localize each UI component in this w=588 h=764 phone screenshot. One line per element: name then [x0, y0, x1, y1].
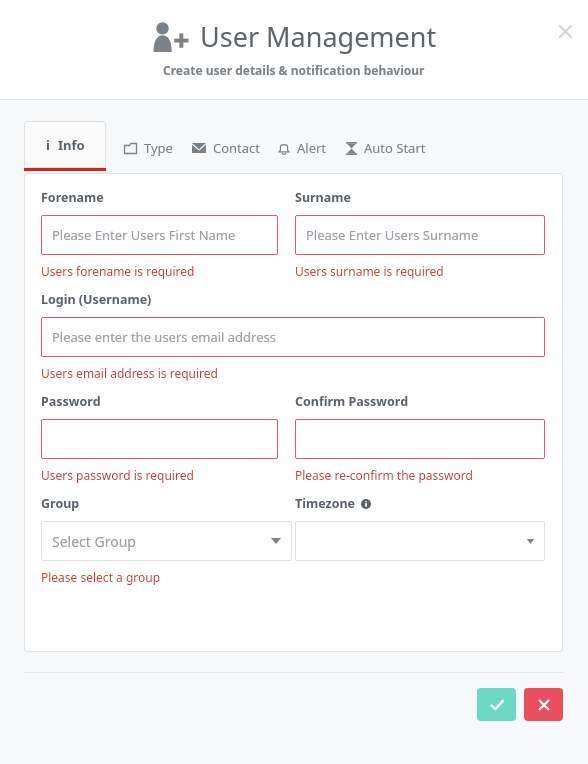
- button[interactable]: Type: [120, 124, 176, 171]
- button[interactable]: Alert: [276, 124, 328, 171]
- button[interactable]: Please Enter Users First Name: [41, 215, 278, 255]
- staticText: i: [46, 136, 50, 154]
- button[interactable]: Select Group: [41, 521, 292, 561]
- staticText: Type: [144, 139, 173, 157]
- staticText: Forename: [41, 189, 104, 206]
- button[interactable]: Select timezone: [295, 521, 545, 561]
- staticText: Auto Start: [364, 139, 426, 157]
- staticText: Surname: [295, 189, 351, 206]
- staticText: Confirm Password: [295, 393, 409, 410]
- staticText: Users forename is required: [41, 263, 195, 279]
- staticText: Login (Username): [41, 291, 152, 308]
- staticText: User Management: [200, 18, 437, 55]
- staticText: Create user details & notification behav…: [163, 62, 425, 78]
- button[interactable]: Save: [477, 688, 516, 721]
- staticText: Info: [58, 136, 85, 154]
- button[interactable]: Close: [553, 19, 577, 43]
- button[interactable]: Auto Start: [342, 124, 430, 171]
- staticText: Users email address is required: [41, 365, 218, 381]
- button[interactable]: Contact: [188, 124, 264, 171]
- staticText: Password: [41, 393, 101, 410]
- button[interactable]: [295, 419, 545, 459]
- staticText: Timezone: [295, 495, 356, 512]
- button[interactable]: [41, 419, 278, 459]
- staticText: Users surname is required: [295, 263, 444, 279]
- staticText: Select Group: [52, 532, 136, 551]
- staticText: Please enter the users email address: [52, 328, 276, 346]
- staticText: Please Enter Users Surname: [306, 226, 479, 244]
- staticText: Please Enter Users First Name: [52, 226, 236, 244]
- button[interactable]: Please Enter Users Surname: [295, 215, 545, 255]
- staticText: Group: [41, 495, 80, 512]
- button[interactable]: i: [24, 121, 106, 171]
- staticText: Alert: [297, 139, 327, 157]
- button[interactable]: Cancel: [524, 688, 563, 721]
- staticText: Please select a group: [41, 569, 161, 585]
- staticText: Contact: [213, 139, 261, 157]
- staticText: Please re-confirm the password: [295, 467, 473, 483]
- staticText: Users password is required: [41, 467, 194, 483]
- button[interactable]: Please enter the users email address: [41, 317, 545, 357]
